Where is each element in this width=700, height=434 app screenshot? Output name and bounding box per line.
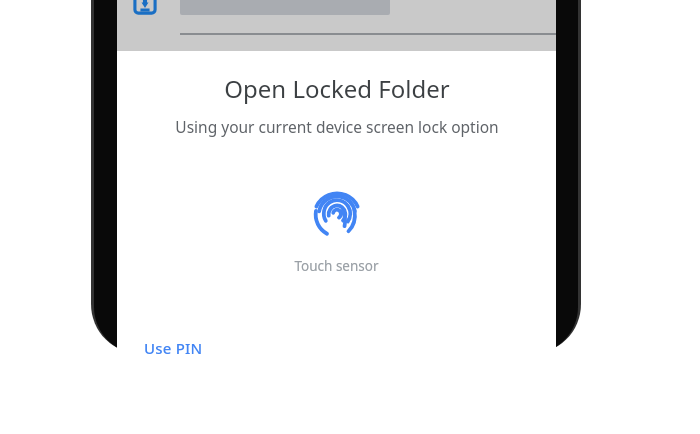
button[interactable]: Touch fingerprint sensor — [282, 181, 391, 279]
button[interactable]: Download — [133, 0, 157, 15]
staticText: Using your current device screen lock op… — [175, 116, 499, 137]
staticText: Touch sensor — [294, 257, 379, 275]
button[interactable]: Use PIN — [134, 332, 213, 364]
staticText: Open Locked Folder — [224, 72, 450, 105]
staticText: Use PIN — [144, 338, 203, 358]
